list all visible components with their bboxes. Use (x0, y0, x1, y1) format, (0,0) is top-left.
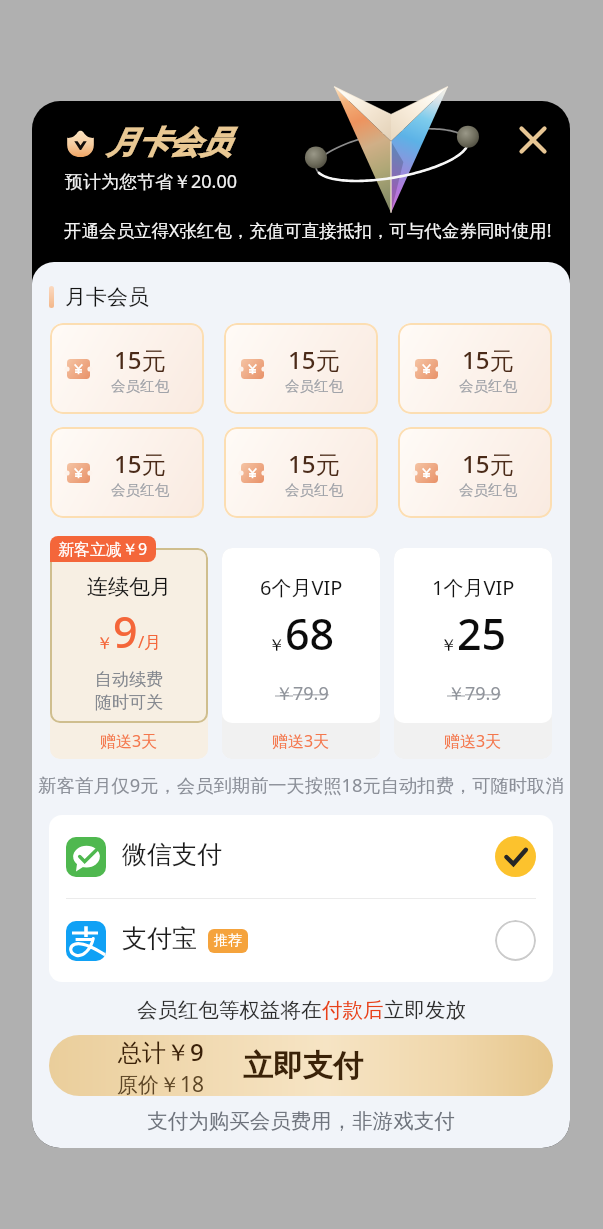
staticText: 会员红包 (111, 481, 169, 499)
staticText: 新客首月仅9元，会员到期前一天按照18元自动扣费，可随时取消 (34, 772, 568, 797)
button[interactable]: 1个月VIP (394, 548, 552, 759)
staticText: 15元 (114, 447, 166, 480)
staticText: 68 (285, 604, 335, 663)
button[interactable]: 6个月VIP (222, 548, 380, 759)
button[interactable]: 连续包月 (50, 548, 208, 759)
staticText: ￥ (268, 635, 285, 656)
staticText: 15元 (462, 343, 514, 376)
staticText: 1个月VIP (432, 574, 515, 601)
button[interactable]: 总计￥9 (49, 1035, 553, 1096)
staticText: 15元 (462, 447, 514, 480)
staticText: 会员红包 (285, 481, 343, 499)
staticText: 微信支付 (122, 839, 222, 870)
staticText: 15元 (288, 343, 340, 376)
staticText: 立即发放 (384, 997, 466, 1023)
button[interactable]: 15元 (50, 427, 204, 518)
staticText: 立即支付 (243, 1047, 363, 1085)
staticText: 总计￥9 (118, 1035, 204, 1068)
staticText: 预计为您节省￥20.00 (65, 169, 238, 194)
staticText: 付款后 (322, 997, 384, 1023)
staticText: ￥79.9 (447, 681, 501, 706)
staticText: 月卡会员 (65, 284, 149, 310)
staticText: ￥ (96, 633, 113, 654)
staticText: 开通会员立得X张红包，充值可直接抵扣，可与代金券同时使用! (64, 218, 552, 242)
staticText: 自动续费 (95, 669, 163, 690)
staticText: /月 (138, 630, 162, 653)
staticText: ￥79.9 (275, 681, 329, 706)
staticText: 15元 (114, 343, 166, 376)
button[interactable]: 微信支付 (49, 815, 553, 898)
staticText: 会员红包等权益将在 (137, 997, 322, 1023)
button[interactable]: 支付宝 (49, 899, 553, 982)
staticText: ￥ (440, 635, 457, 656)
staticText: 赠送3天 (444, 730, 502, 752)
staticText: 支付宝 (122, 923, 197, 954)
button[interactable]: Close (508, 115, 558, 165)
staticText: 赠送3天 (272, 730, 330, 752)
staticText: 会员红包 (459, 481, 517, 499)
staticText: 6个月VIP (260, 574, 343, 601)
staticText: 连续包月 (87, 574, 171, 600)
staticText: 15元 (288, 447, 340, 480)
button[interactable]: 15元 (224, 323, 378, 414)
staticText: 随时可关 (95, 692, 163, 713)
staticText: 25 (457, 604, 507, 663)
button[interactable]: 15元 (50, 323, 204, 414)
button[interactable]: 15元 (398, 427, 552, 518)
staticText: 9 (113, 602, 138, 661)
staticText: 新客立减￥9 (58, 538, 148, 560)
staticText: 推荐 (214, 932, 242, 950)
staticText: 会员红包 (285, 377, 343, 395)
button[interactable]: 新客立减￥9 (58, 538, 148, 560)
staticText: 支付为购买会员费用，非游戏支付 (32, 1108, 570, 1134)
staticText: 原价￥18 (117, 1070, 205, 1096)
button[interactable]: 15元 (224, 427, 378, 518)
staticText: 赠送3天 (100, 730, 158, 752)
staticText: 会员红包 (111, 377, 169, 395)
button[interactable]: 15元 (398, 323, 552, 414)
staticText: 会员红包 (459, 377, 517, 395)
staticText: 月卡会员 (107, 123, 231, 162)
